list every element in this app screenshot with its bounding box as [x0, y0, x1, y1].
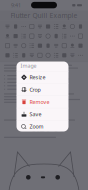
- staticText: Crop: [30, 86, 41, 93]
- button[interactable]: Remove: [16, 96, 68, 108]
- button[interactable]: Formatting control: [36, 42, 43, 49]
- button[interactable]: Formatting control: [4, 33, 11, 40]
- button[interactable]: Formatting control: [12, 42, 19, 49]
- button[interactable]: Formatting control: [28, 33, 35, 40]
- button[interactable]: Formatting control: [4, 42, 11, 49]
- button[interactable]: Formatting control: [69, 52, 76, 59]
- button[interactable]: Formatting control: [12, 52, 19, 59]
- button[interactable]: Formatting control: [53, 52, 60, 59]
- button[interactable]: Formatting control: [53, 23, 60, 30]
- button[interactable]: Formatting control: [28, 23, 35, 30]
- button[interactable]: Formatting control: [45, 42, 52, 49]
- button[interactable]: Formatting control: [69, 42, 76, 49]
- button[interactable]: Formatting control: [61, 23, 68, 30]
- staticText: Flutter Quill Example: [10, 11, 77, 20]
- button[interactable]: Formatting control: [20, 23, 27, 30]
- button[interactable]: Formatting control: [12, 23, 19, 30]
- button[interactable]: Zoom: [16, 120, 68, 132]
- staticText: Save: [30, 111, 42, 118]
- button[interactable]: Formatting control: [53, 42, 60, 49]
- button[interactable]: Formatting control: [61, 52, 68, 59]
- button[interactable]: Formatting control: [77, 42, 84, 49]
- button[interactable]: Resize: [16, 71, 68, 83]
- button[interactable]: Formatting control: [4, 23, 11, 30]
- staticText: font size 35: [31, 106, 65, 134]
- button[interactable]: Formatting control: [20, 52, 27, 59]
- button[interactable]: Formatting control: [4, 52, 11, 59]
- button[interactable]: Formatting control: [45, 52, 52, 59]
- button[interactable]: Formatting control: [69, 33, 76, 40]
- button[interactable]: Formatting control: [45, 23, 52, 30]
- button[interactable]: Formatting control: [77, 33, 84, 40]
- staticText: Image: [20, 62, 36, 69]
- button[interactable]: Formatting control: [28, 42, 35, 49]
- button[interactable]: Formatting control: [61, 33, 68, 40]
- button[interactable]: Formatting control: [69, 23, 76, 30]
- button[interactable]: Formatting control: [20, 33, 27, 40]
- button[interactable]: Formatting control: [36, 23, 43, 30]
- button[interactable]: Crop: [16, 84, 68, 96]
- button[interactable]: Save: [16, 108, 68, 120]
- button[interactable]: Formatting control: [77, 23, 84, 30]
- button[interactable]: Formatting control: [28, 52, 35, 59]
- staticText: Zoom: [30, 123, 44, 130]
- staticText: Resize: [30, 74, 46, 81]
- button[interactable]: Formatting control: [12, 33, 19, 40]
- button[interactable]: Formatting control: [61, 42, 68, 49]
- button[interactable]: Formatting control: [53, 33, 60, 40]
- button[interactable]: Formatting control: [36, 52, 43, 59]
- button[interactable]: Formatting control: [45, 33, 52, 40]
- button[interactable]: Formatting control: [77, 52, 84, 59]
- staticText: 9:41: [11, 2, 21, 9]
- button[interactable]: Formatting control: [36, 33, 43, 40]
- staticText: Remove: [30, 98, 50, 105]
- button[interactable]: Formatting control: [20, 42, 27, 49]
